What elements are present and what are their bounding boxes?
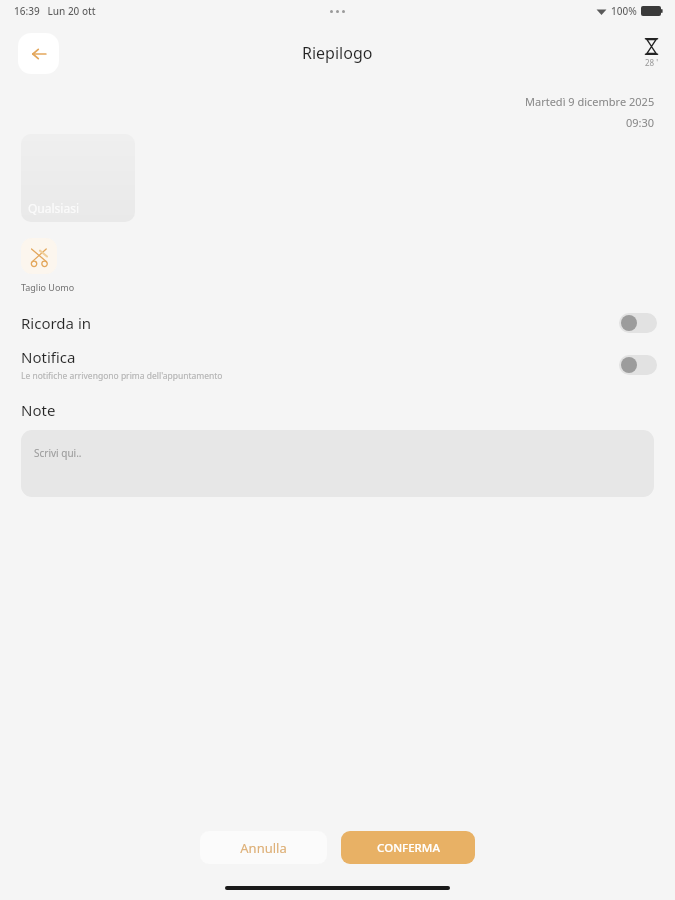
staticText: Le notifiche arrivengono prima dell'appu… xyxy=(21,370,223,382)
staticText: 09:30 xyxy=(626,115,655,130)
button[interactable]: Interruttore xyxy=(619,355,657,375)
staticText: CONFERMA xyxy=(377,840,440,856)
button[interactable]: Notifica xyxy=(0,347,675,382)
button[interactable]: Taglio Uomo xyxy=(21,238,75,293)
button[interactable]: Scrivi qui.. xyxy=(21,430,654,497)
button[interactable]: Annulla xyxy=(200,831,327,864)
staticText: Qualsiasi xyxy=(28,200,80,216)
staticText: Notifica xyxy=(21,347,76,367)
staticText: Martedì 9 dicembre 2025 xyxy=(525,94,655,109)
staticText: 28 ' xyxy=(645,57,659,68)
staticText: Taglio Uomo xyxy=(21,281,75,293)
staticText: Ricorda in xyxy=(21,313,92,333)
staticText: Riepilogo xyxy=(302,42,373,64)
staticText: 16:39 Lun 20 ott xyxy=(14,4,96,18)
button[interactable]: Durata xyxy=(644,38,659,68)
button[interactable]: Indietro xyxy=(18,33,59,74)
staticText: Scrivi qui.. xyxy=(34,446,82,460)
button[interactable]: Interruttore xyxy=(619,313,657,333)
staticText: Note xyxy=(21,400,56,420)
staticText: Annulla xyxy=(240,839,287,857)
staticText: 100% xyxy=(611,4,637,18)
button[interactable]: CONFERMA xyxy=(341,831,475,864)
button[interactable]: Ricorda in xyxy=(0,313,675,333)
